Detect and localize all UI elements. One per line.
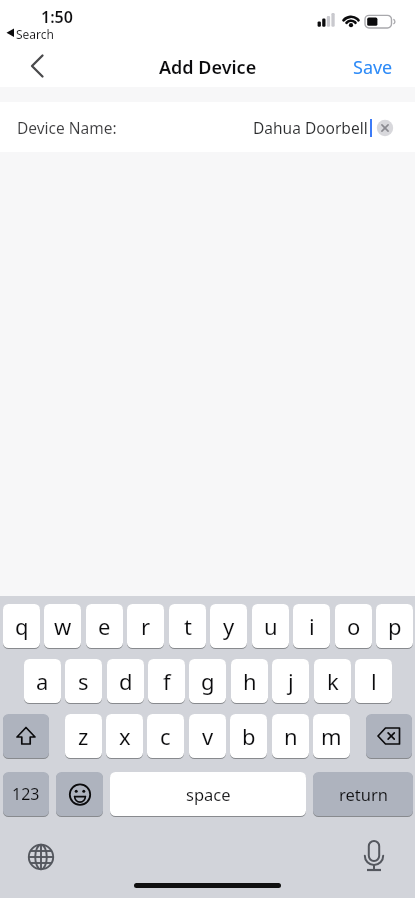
staticText: v — [202, 721, 214, 751]
staticText: m — [321, 721, 342, 751]
staticText: Add Device — [159, 55, 257, 80]
staticText: h — [243, 666, 257, 696]
staticText: j — [288, 666, 294, 696]
staticText: Search — [16, 26, 54, 42]
staticText: Dahua Doorbell — [253, 117, 368, 138]
staticText: u — [264, 611, 278, 641]
staticText: z — [78, 721, 89, 751]
staticText: return — [339, 783, 388, 805]
staticText: d — [119, 666, 133, 696]
staticText: e — [98, 611, 111, 641]
staticText: q — [15, 611, 29, 641]
staticText: x — [119, 721, 131, 751]
staticText: b — [242, 721, 256, 751]
staticText: y — [223, 611, 235, 641]
staticText: f — [163, 666, 171, 696]
staticText: o — [347, 611, 361, 641]
staticText: s — [78, 666, 89, 696]
staticText: l — [371, 666, 377, 696]
staticText: k — [327, 666, 339, 696]
staticText: 123 — [12, 783, 40, 805]
staticText: Save — [353, 55, 393, 80]
staticText: r — [141, 611, 151, 641]
staticText: i — [309, 611, 315, 641]
staticText: g — [201, 666, 215, 696]
staticText: p — [388, 611, 402, 641]
staticText: n — [284, 721, 298, 751]
staticText: c — [160, 721, 171, 751]
staticText: a — [36, 666, 49, 696]
staticText: space — [186, 783, 231, 805]
staticText: w — [54, 611, 72, 641]
staticText: 1:50 — [41, 6, 73, 28]
staticText: t — [184, 611, 192, 641]
staticText: Device Name: — [17, 117, 117, 138]
